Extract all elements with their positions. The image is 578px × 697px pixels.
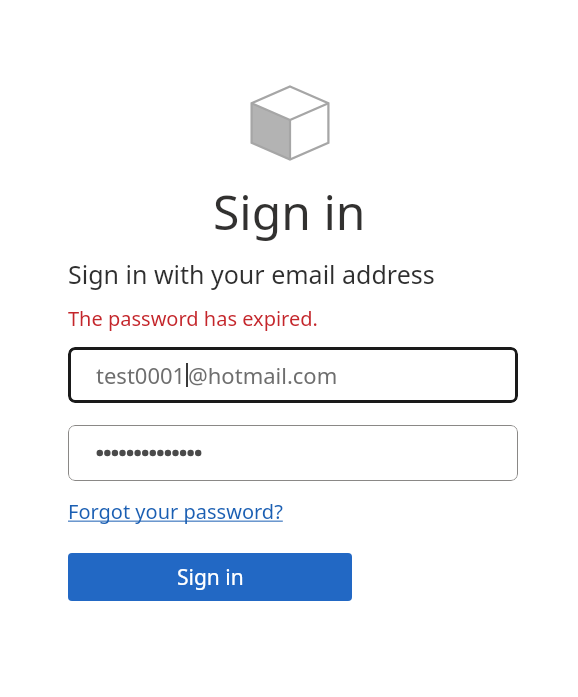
staticText: Sign in with your email address	[68, 257, 435, 291]
button[interactable]: Forgot your password?	[68, 498, 283, 525]
staticText: test0001	[96, 360, 186, 390]
button[interactable]: test0001	[68, 347, 518, 403]
button[interactable]: Sign in	[68, 553, 352, 601]
staticText: The password has expired.	[68, 305, 318, 332]
staticText: @hotmail.com	[188, 360, 338, 390]
staticText: Sign in	[177, 563, 244, 592]
staticText: Sign in	[213, 179, 366, 244]
button[interactable]	[68, 425, 518, 481]
staticText: Forgot your password?	[68, 498, 283, 525]
